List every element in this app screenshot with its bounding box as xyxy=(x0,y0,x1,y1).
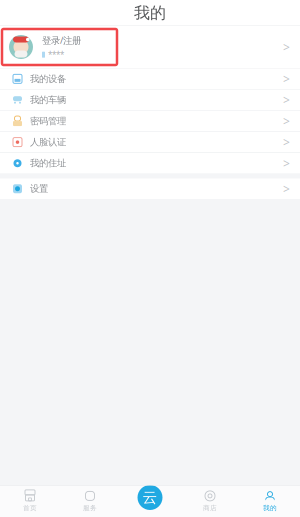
staticText: **** xyxy=(48,49,64,60)
staticText: 人脸认证 xyxy=(30,136,66,148)
button[interactable]: 设置 xyxy=(0,178,300,199)
button[interactable]: 云 xyxy=(120,485,180,517)
button[interactable]: 首页 xyxy=(0,485,60,517)
button[interactable]: 我的车辆 xyxy=(0,90,300,110)
button[interactable]: 我的住址 xyxy=(0,153,300,173)
button[interactable]: 我的 xyxy=(240,485,300,517)
staticText: 我的 xyxy=(134,3,166,23)
staticText: 首页 xyxy=(23,504,37,512)
staticText: > xyxy=(283,181,290,197)
staticText: > xyxy=(283,92,290,108)
staticText: 设置 xyxy=(30,183,48,194)
button[interactable]: 人脸认证 xyxy=(0,132,300,152)
staticText: 服务 xyxy=(83,504,97,512)
staticText: > xyxy=(283,39,290,55)
staticText: 我的住址 xyxy=(30,157,66,169)
button[interactable]: 登录/注册 xyxy=(0,26,300,68)
staticText: > xyxy=(283,71,290,87)
staticText: 我的车辆 xyxy=(30,94,66,106)
staticText: 商店 xyxy=(203,504,217,512)
button[interactable]: 我的设备 xyxy=(0,69,300,89)
staticText: > xyxy=(283,134,290,150)
staticText: > xyxy=(283,155,290,171)
staticText: 密码管理 xyxy=(30,115,66,127)
button[interactable]: 密码管理 xyxy=(0,111,300,131)
staticText: 我的设备 xyxy=(30,73,66,85)
button[interactable]: 服务 xyxy=(60,485,120,517)
staticText: > xyxy=(283,113,290,129)
staticText: 云 xyxy=(142,488,157,506)
button[interactable]: 商店 xyxy=(180,485,240,517)
staticText: 我的 xyxy=(263,504,277,512)
staticText: 登录/注册 xyxy=(42,34,81,46)
